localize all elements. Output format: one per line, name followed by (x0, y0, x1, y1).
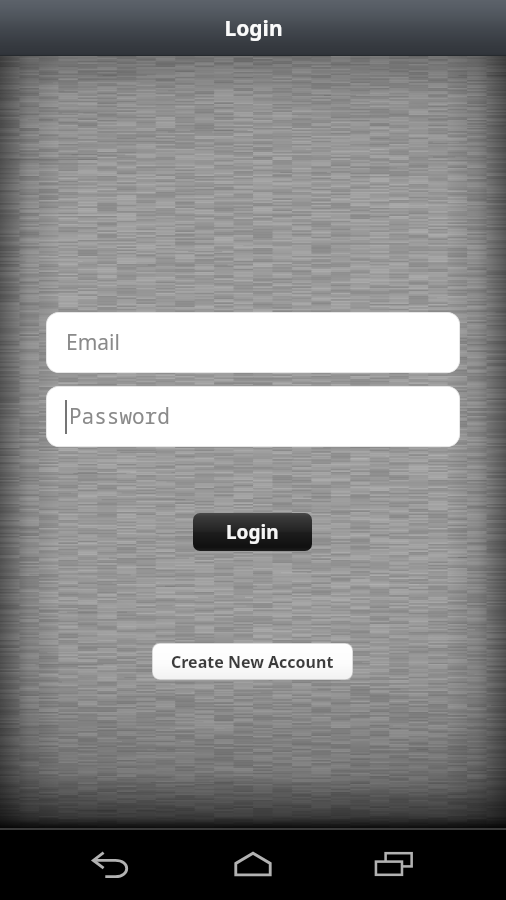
button[interactable]: Email (46, 312, 460, 373)
staticText: Email (66, 328, 120, 357)
button[interactable]: Home (219, 842, 287, 886)
staticText: Login (224, 14, 283, 43)
staticText: Create New Account (171, 651, 334, 673)
button[interactable]: Password (46, 386, 460, 447)
button[interactable]: Recent apps (360, 842, 428, 886)
button[interactable]: Back (78, 842, 146, 886)
button[interactable]: Login (193, 513, 312, 551)
staticText: Login (226, 519, 279, 545)
staticText: Password (69, 402, 170, 431)
button[interactable]: Create New Account (152, 643, 353, 680)
